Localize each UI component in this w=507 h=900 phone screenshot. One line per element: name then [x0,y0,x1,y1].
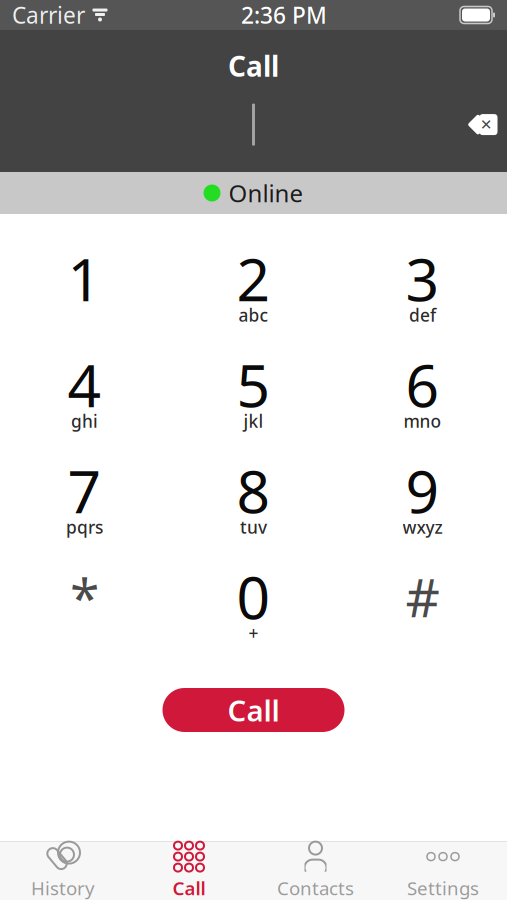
staticText: 8 [236,451,270,529]
staticText: 5 [236,345,270,423]
button[interactable]: 4 [0,366,169,428]
button[interactable]: Call [126,842,252,900]
button[interactable]: 2 [169,260,338,322]
button[interactable]: History [0,842,126,900]
staticText: History [31,876,95,900]
button[interactable]: 3 [338,260,507,322]
staticText: 9 [405,451,439,529]
staticText: ghi [71,409,98,432]
staticText: mno [403,409,441,432]
staticText: jkl [243,409,263,432]
staticText: Call [227,690,279,729]
staticText: abc [238,303,268,326]
staticText: def [409,303,436,326]
staticText: 6 [405,345,439,423]
staticText: + [248,621,258,644]
button[interactable]: * [0,578,169,640]
staticText: Online [228,177,303,209]
button[interactable]: 0 [169,578,338,640]
staticText: Carrier [12,0,85,30]
staticText: Settings [407,876,479,900]
staticText: 1 [67,239,101,317]
staticText: 2:36 PM [241,0,327,30]
staticText: pqrs [66,515,103,538]
staticText: 3 [405,239,439,317]
button[interactable]: Contacts [252,842,379,900]
staticText: ✕ [480,116,492,133]
staticText: # [405,561,439,632]
button[interactable]: # [338,578,507,640]
button[interactable]: 6 [338,366,507,428]
staticText: * [70,561,99,632]
button[interactable]: 8 [169,472,338,534]
staticText: 2 [236,239,270,317]
button[interactable]: 7 [0,472,169,534]
button[interactable]: 1 [0,260,169,322]
staticText: tuv [240,515,267,538]
button[interactable]: 9 [338,472,507,534]
staticText: Contacts [277,876,354,900]
button[interactable]: 5 [169,366,338,428]
staticText: Call [228,47,279,85]
button[interactable]: Call [162,688,344,732]
staticText: wxyz [402,515,442,538]
staticText: 0 [236,557,270,635]
staticText: 7 [67,451,101,529]
staticText: 4 [67,345,101,423]
button[interactable]: Delete [455,101,507,149]
button[interactable]: Settings [379,842,507,900]
staticText: Call [172,876,205,900]
